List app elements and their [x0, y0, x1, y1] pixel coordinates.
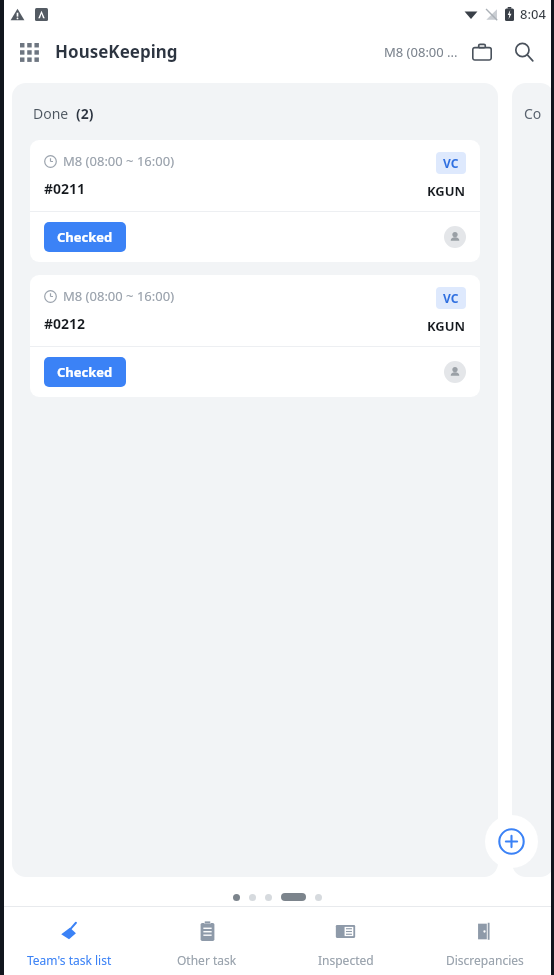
- staticText: M8 (08:00 ~ 16:00): [63, 287, 175, 305]
- staticText: KGUN: [427, 182, 466, 200]
- staticText: #0211: [44, 179, 86, 198]
- staticText: #0212: [44, 314, 86, 333]
- button[interactable]: Assignee: [444, 361, 466, 383]
- staticText: 8:04: [520, 5, 546, 23]
- staticText: Team's task list: [27, 952, 112, 968]
- button[interactable]: Other task: [138, 907, 276, 975]
- button[interactable]: Checked: [44, 357, 126, 387]
- staticText: Done: [33, 104, 69, 123]
- staticText: (2): [76, 104, 94, 123]
- staticText: M8 (08:00 ~ 16:00): [63, 152, 175, 170]
- button[interactable]: Assignee: [444, 226, 466, 248]
- staticText: M8 (08:00 ...: [384, 43, 458, 61]
- button[interactable]: M8 (08:00 ~ 16:00): [30, 275, 480, 397]
- staticText: VC: [443, 290, 459, 306]
- staticText: KGUN: [427, 317, 466, 335]
- staticText: VC: [443, 155, 459, 171]
- staticText: Discrepancies: [446, 952, 524, 968]
- button[interactable]: Add task: [485, 815, 538, 868]
- button[interactable]: Team's task list: [0, 907, 138, 975]
- staticText: Inspected: [318, 952, 374, 968]
- staticText: HouseKeeping: [55, 40, 178, 63]
- button[interactable]: Apps menu: [14, 37, 44, 67]
- staticText: Checked: [57, 228, 113, 246]
- button[interactable]: M8 (08:00 ~ 16:00): [30, 140, 480, 262]
- staticText: Other task: [177, 952, 237, 968]
- button[interactable]: Inspected: [276, 907, 415, 975]
- button[interactable]: Discrepancies: [415, 907, 554, 975]
- button[interactable]: Shift: [466, 36, 498, 68]
- button[interactable]: Search: [508, 36, 540, 68]
- staticText: Com: [524, 104, 554, 123]
- button[interactable]: Checked: [44, 222, 126, 252]
- staticText: Checked: [57, 363, 113, 381]
